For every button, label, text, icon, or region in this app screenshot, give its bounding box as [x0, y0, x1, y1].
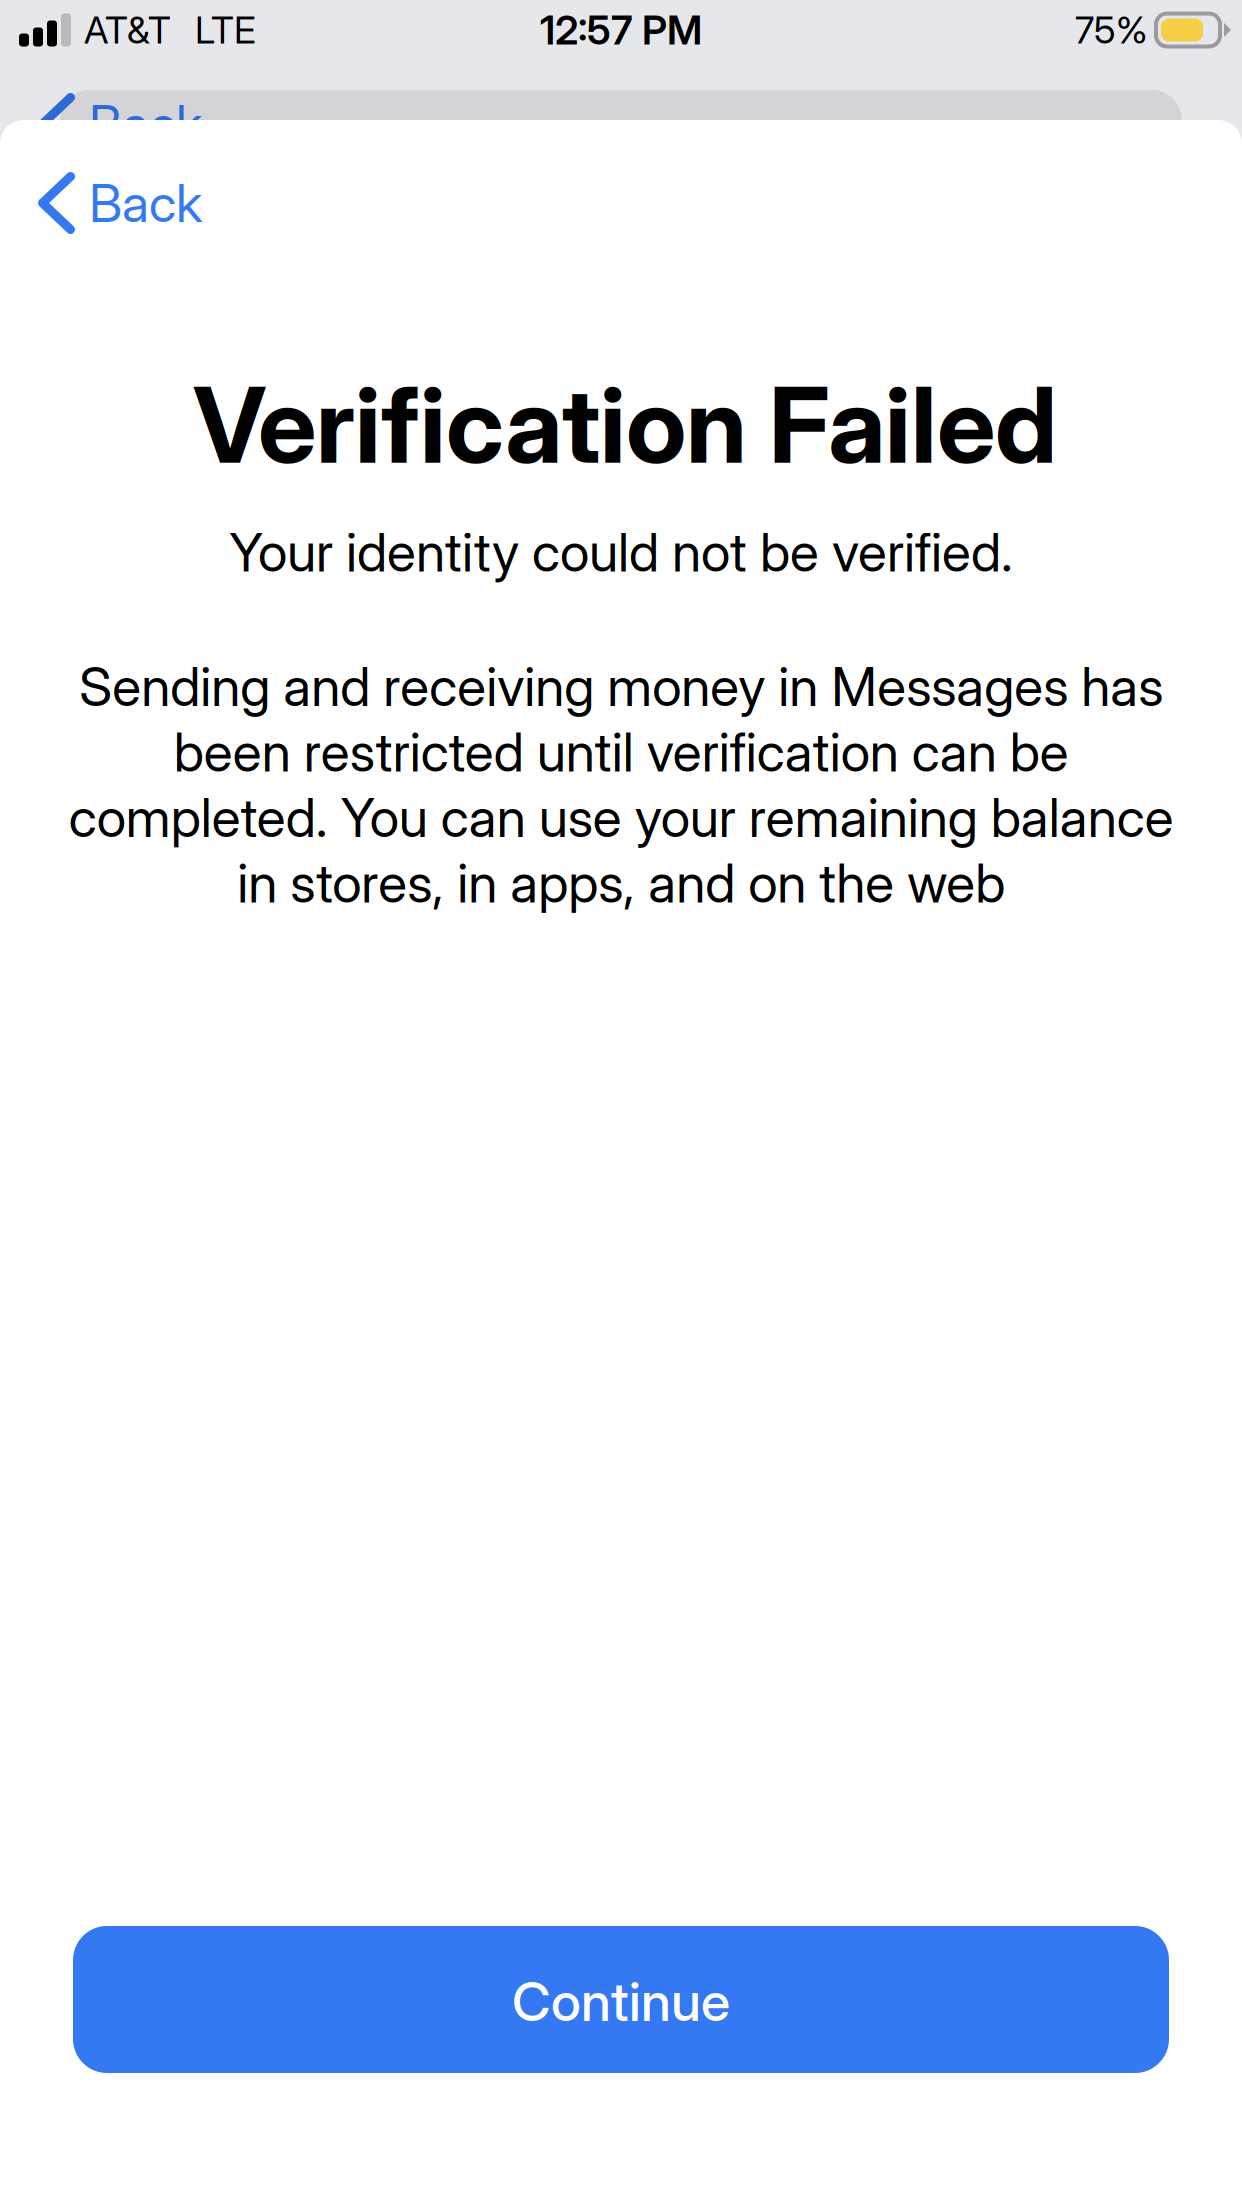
staticText: Continue [512, 1969, 730, 2034]
staticText: Verification Failed [193, 362, 1057, 488]
staticText: Sending and receiving money in Messages … [68, 654, 1173, 915]
staticText: Your identity could not be verified. [229, 520, 1013, 584]
staticText: Back [89, 92, 202, 155]
staticText: LTE [195, 7, 256, 53]
staticText: AT&T [84, 7, 171, 53]
button[interactable]: Back [0, 155, 230, 251]
button[interactable]: Back [0, 76, 230, 172]
staticText: Back [89, 171, 202, 234]
button[interactable]: Continue [73, 1926, 1169, 2073]
staticText: 12:57 PM [540, 6, 702, 54]
staticText: 75% [1075, 7, 1148, 53]
